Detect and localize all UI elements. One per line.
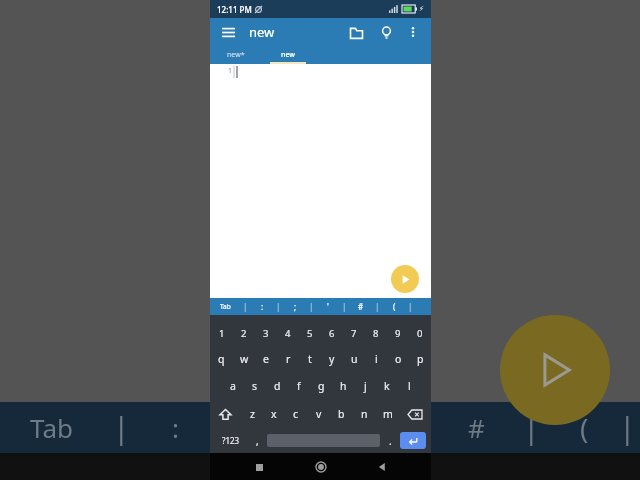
button[interactable]: Open folder bbox=[345, 21, 367, 43]
staticText: Tab bbox=[220, 302, 231, 311]
staticText: | bbox=[113, 407, 130, 448]
staticText: o bbox=[395, 352, 402, 366]
staticText: w bbox=[240, 352, 249, 366]
button[interactable]: More options bbox=[403, 22, 423, 42]
staticText: r bbox=[286, 352, 291, 366]
button[interactable]: ' bbox=[317, 298, 339, 315]
staticText: new* bbox=[227, 50, 245, 60]
staticText: i bbox=[375, 352, 378, 366]
button[interactable]: r bbox=[277, 346, 299, 372]
staticText: l bbox=[408, 379, 411, 393]
button[interactable]: new bbox=[262, 46, 314, 64]
staticText: Tab bbox=[30, 410, 73, 445]
staticText: | bbox=[276, 301, 281, 312]
button[interactable]: s bbox=[244, 372, 266, 400]
button[interactable]: Shift bbox=[210, 400, 241, 428]
staticText: ; bbox=[294, 301, 297, 312]
button[interactable]: 0 bbox=[409, 320, 431, 346]
staticText: | bbox=[342, 301, 347, 312]
button[interactable]: d bbox=[266, 372, 288, 400]
button[interactable]: x bbox=[263, 400, 285, 428]
button[interactable]: z bbox=[241, 400, 263, 428]
staticText: ?123 bbox=[222, 435, 240, 446]
staticText: ( bbox=[393, 301, 396, 312]
button[interactable]: q bbox=[210, 346, 233, 372]
button[interactable]: . bbox=[380, 428, 400, 453]
button[interactable]: e bbox=[255, 346, 277, 372]
button[interactable]: | bbox=[306, 298, 317, 315]
staticText: y bbox=[329, 352, 335, 366]
button[interactable]: l bbox=[398, 372, 420, 400]
staticText: ( bbox=[580, 409, 589, 447]
button[interactable]: Navigation menu bbox=[218, 22, 238, 42]
button[interactable]: g bbox=[310, 372, 332, 400]
staticText: h bbox=[340, 379, 347, 393]
staticText: ' bbox=[327, 301, 329, 312]
staticText: e bbox=[263, 352, 269, 366]
button[interactable]: n bbox=[353, 400, 376, 428]
button[interactable]: Back bbox=[370, 455, 394, 479]
staticText: 1 bbox=[219, 327, 225, 340]
button[interactable]: c bbox=[285, 400, 307, 428]
staticText: v bbox=[316, 407, 322, 421]
button[interactable]: Recents bbox=[247, 455, 271, 479]
staticText: 12:11 PM bbox=[217, 4, 252, 15]
button[interactable]: j bbox=[354, 372, 376, 400]
staticText: 4 bbox=[285, 327, 291, 340]
staticText: m bbox=[383, 407, 393, 421]
button[interactable]: | bbox=[339, 298, 350, 315]
button[interactable]: Home bbox=[309, 455, 333, 479]
staticText: g bbox=[318, 379, 325, 393]
button[interactable]: : bbox=[251, 298, 273, 315]
button[interactable]: Hints bbox=[375, 21, 397, 43]
staticText: p bbox=[417, 352, 424, 366]
button[interactable]: v bbox=[307, 400, 330, 428]
button[interactable]: 8 bbox=[365, 320, 387, 346]
button[interactable]: t bbox=[299, 346, 321, 372]
button[interactable]: 3 bbox=[255, 320, 277, 346]
staticText: a bbox=[230, 379, 236, 393]
button[interactable]: Tab bbox=[210, 298, 240, 315]
button[interactable]: f bbox=[288, 372, 310, 400]
button[interactable]: u bbox=[343, 346, 365, 372]
button[interactable]: 6 bbox=[321, 320, 343, 346]
button[interactable]: i bbox=[365, 346, 387, 372]
button[interactable]: 1 bbox=[210, 320, 233, 346]
button[interactable]: h bbox=[332, 372, 354, 400]
button[interactable]: ( bbox=[383, 298, 405, 315]
button[interactable]: 2 bbox=[233, 320, 255, 346]
staticText: n bbox=[361, 407, 368, 421]
button[interactable]: 9 bbox=[387, 320, 409, 346]
button[interactable]: Enter bbox=[400, 432, 426, 449]
button[interactable]: # bbox=[350, 298, 372, 315]
button[interactable]: Run bbox=[391, 265, 419, 293]
button[interactable]: | bbox=[372, 298, 383, 315]
button[interactable]: | bbox=[273, 298, 284, 315]
button[interactable]: y bbox=[321, 346, 343, 372]
staticText: 8 bbox=[373, 327, 379, 340]
button[interactable]: ; bbox=[284, 298, 306, 315]
button[interactable]: | bbox=[240, 298, 251, 315]
staticText: | bbox=[619, 407, 636, 448]
staticText: new bbox=[249, 23, 275, 41]
button[interactable]: b bbox=[330, 400, 353, 428]
button[interactable]: w bbox=[233, 346, 255, 372]
button[interactable]: k bbox=[376, 372, 398, 400]
button[interactable]: a bbox=[222, 372, 244, 400]
button[interactable]: new* bbox=[210, 46, 262, 64]
staticText: 1 bbox=[227, 66, 232, 76]
button[interactable]: Backspace bbox=[399, 400, 431, 428]
button[interactable]: 5 bbox=[299, 320, 321, 346]
button[interactable]: o bbox=[387, 346, 409, 372]
button[interactable]: p bbox=[409, 346, 431, 372]
staticText: s bbox=[252, 379, 258, 393]
button[interactable]: , bbox=[247, 428, 267, 453]
button[interactable]: 4 bbox=[277, 320, 299, 346]
button[interactable]: ?123 bbox=[215, 428, 247, 453]
button[interactable]: 7 bbox=[343, 320, 365, 346]
button[interactable]: | bbox=[405, 298, 416, 315]
staticText: 9 bbox=[395, 327, 401, 340]
staticText: 0 bbox=[417, 327, 423, 340]
button[interactable]: m bbox=[376, 400, 399, 428]
